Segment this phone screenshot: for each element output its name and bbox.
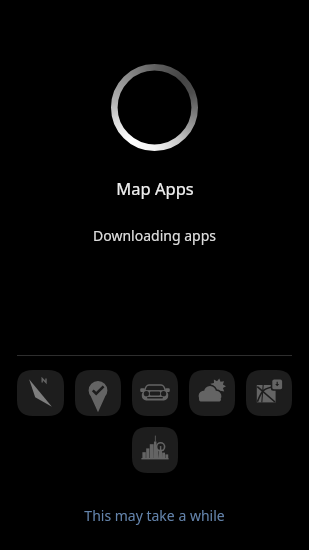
button[interactable]: Weather bbox=[189, 370, 235, 416]
button[interactable]: Saved places bbox=[75, 370, 121, 416]
staticText: This may take a while bbox=[84, 506, 225, 525]
button[interactable]: Compass bbox=[17, 370, 64, 416]
staticText: Downloading apps bbox=[93, 226, 216, 245]
button[interactable]: City guide bbox=[132, 427, 178, 473]
button[interactable]: Driving bbox=[132, 370, 178, 416]
button[interactable]: Offline maps bbox=[246, 370, 292, 416]
button[interactable]: This may take a while bbox=[0, 506, 309, 525]
staticText: Map Apps bbox=[116, 177, 194, 199]
